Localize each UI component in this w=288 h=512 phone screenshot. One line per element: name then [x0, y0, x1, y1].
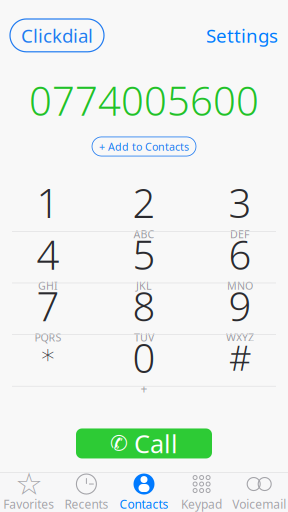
staticText: GHI [38, 279, 58, 293]
staticText: 8 [132, 279, 155, 332]
staticText: 6 [228, 228, 251, 281]
staticText: 0 [132, 331, 155, 384]
staticText: Settings [206, 23, 278, 48]
staticText: WXYZ [226, 330, 254, 344]
button[interactable]: 2 [96, 180, 192, 231]
staticText: + Add to Contacts [99, 139, 189, 154]
staticText: 3 [228, 176, 251, 229]
staticText: Favorites [3, 496, 54, 512]
button[interactable]: # [192, 335, 288, 386]
staticText: TUV [134, 330, 154, 344]
staticText: + [140, 381, 147, 397]
staticText: ✆ [110, 431, 128, 456]
button[interactable]: 7 [0, 283, 96, 334]
button[interactable]: Contacts [115, 472, 173, 512]
staticText: 0774005600 [29, 74, 259, 127]
staticText: ☆ [15, 467, 42, 501]
staticText: Clickdial [21, 23, 93, 48]
button[interactable]: 6 [192, 232, 288, 283]
button[interactable]: Voicemail [230, 472, 288, 512]
button[interactable]: ✆ [76, 428, 212, 458]
button[interactable]: 8 [96, 283, 192, 334]
staticText: 1 [36, 176, 59, 229]
staticText: Call [134, 427, 178, 460]
staticText: Keypad [181, 496, 222, 512]
button[interactable]: 1 [0, 180, 96, 231]
button[interactable]: 9 [192, 283, 288, 334]
staticText: ∗ [39, 339, 56, 369]
staticText: 4 [36, 228, 59, 281]
staticText: JKL [136, 279, 152, 293]
button[interactable]: Keypad [173, 472, 230, 512]
staticText: DEF [230, 227, 250, 241]
button[interactable]: Settings [206, 19, 278, 52]
button[interactable]: ☆ [0, 472, 58, 512]
button[interactable]: Clickdial [10, 19, 104, 52]
staticText: 7 [36, 279, 59, 332]
staticText: # [229, 334, 251, 380]
staticText: 5 [132, 228, 155, 281]
button[interactable]: 4 [0, 232, 96, 283]
staticText: 2 [132, 176, 155, 229]
button[interactable]: 0 [96, 335, 192, 386]
staticText: Contacts [119, 496, 168, 512]
staticText: MNO [227, 279, 253, 293]
staticText: 9 [228, 279, 251, 332]
staticText: Voicemail [232, 496, 286, 512]
staticText: PQRS [34, 330, 61, 344]
button[interactable]: 3 [192, 180, 288, 231]
staticText: ABC [133, 227, 154, 241]
button[interactable]: ∗ [0, 335, 96, 386]
button[interactable]: Recents [58, 472, 115, 512]
staticText: Recents [64, 496, 108, 512]
button[interactable]: 5 [96, 232, 192, 283]
button[interactable]: + Add to Contacts [92, 137, 196, 156]
